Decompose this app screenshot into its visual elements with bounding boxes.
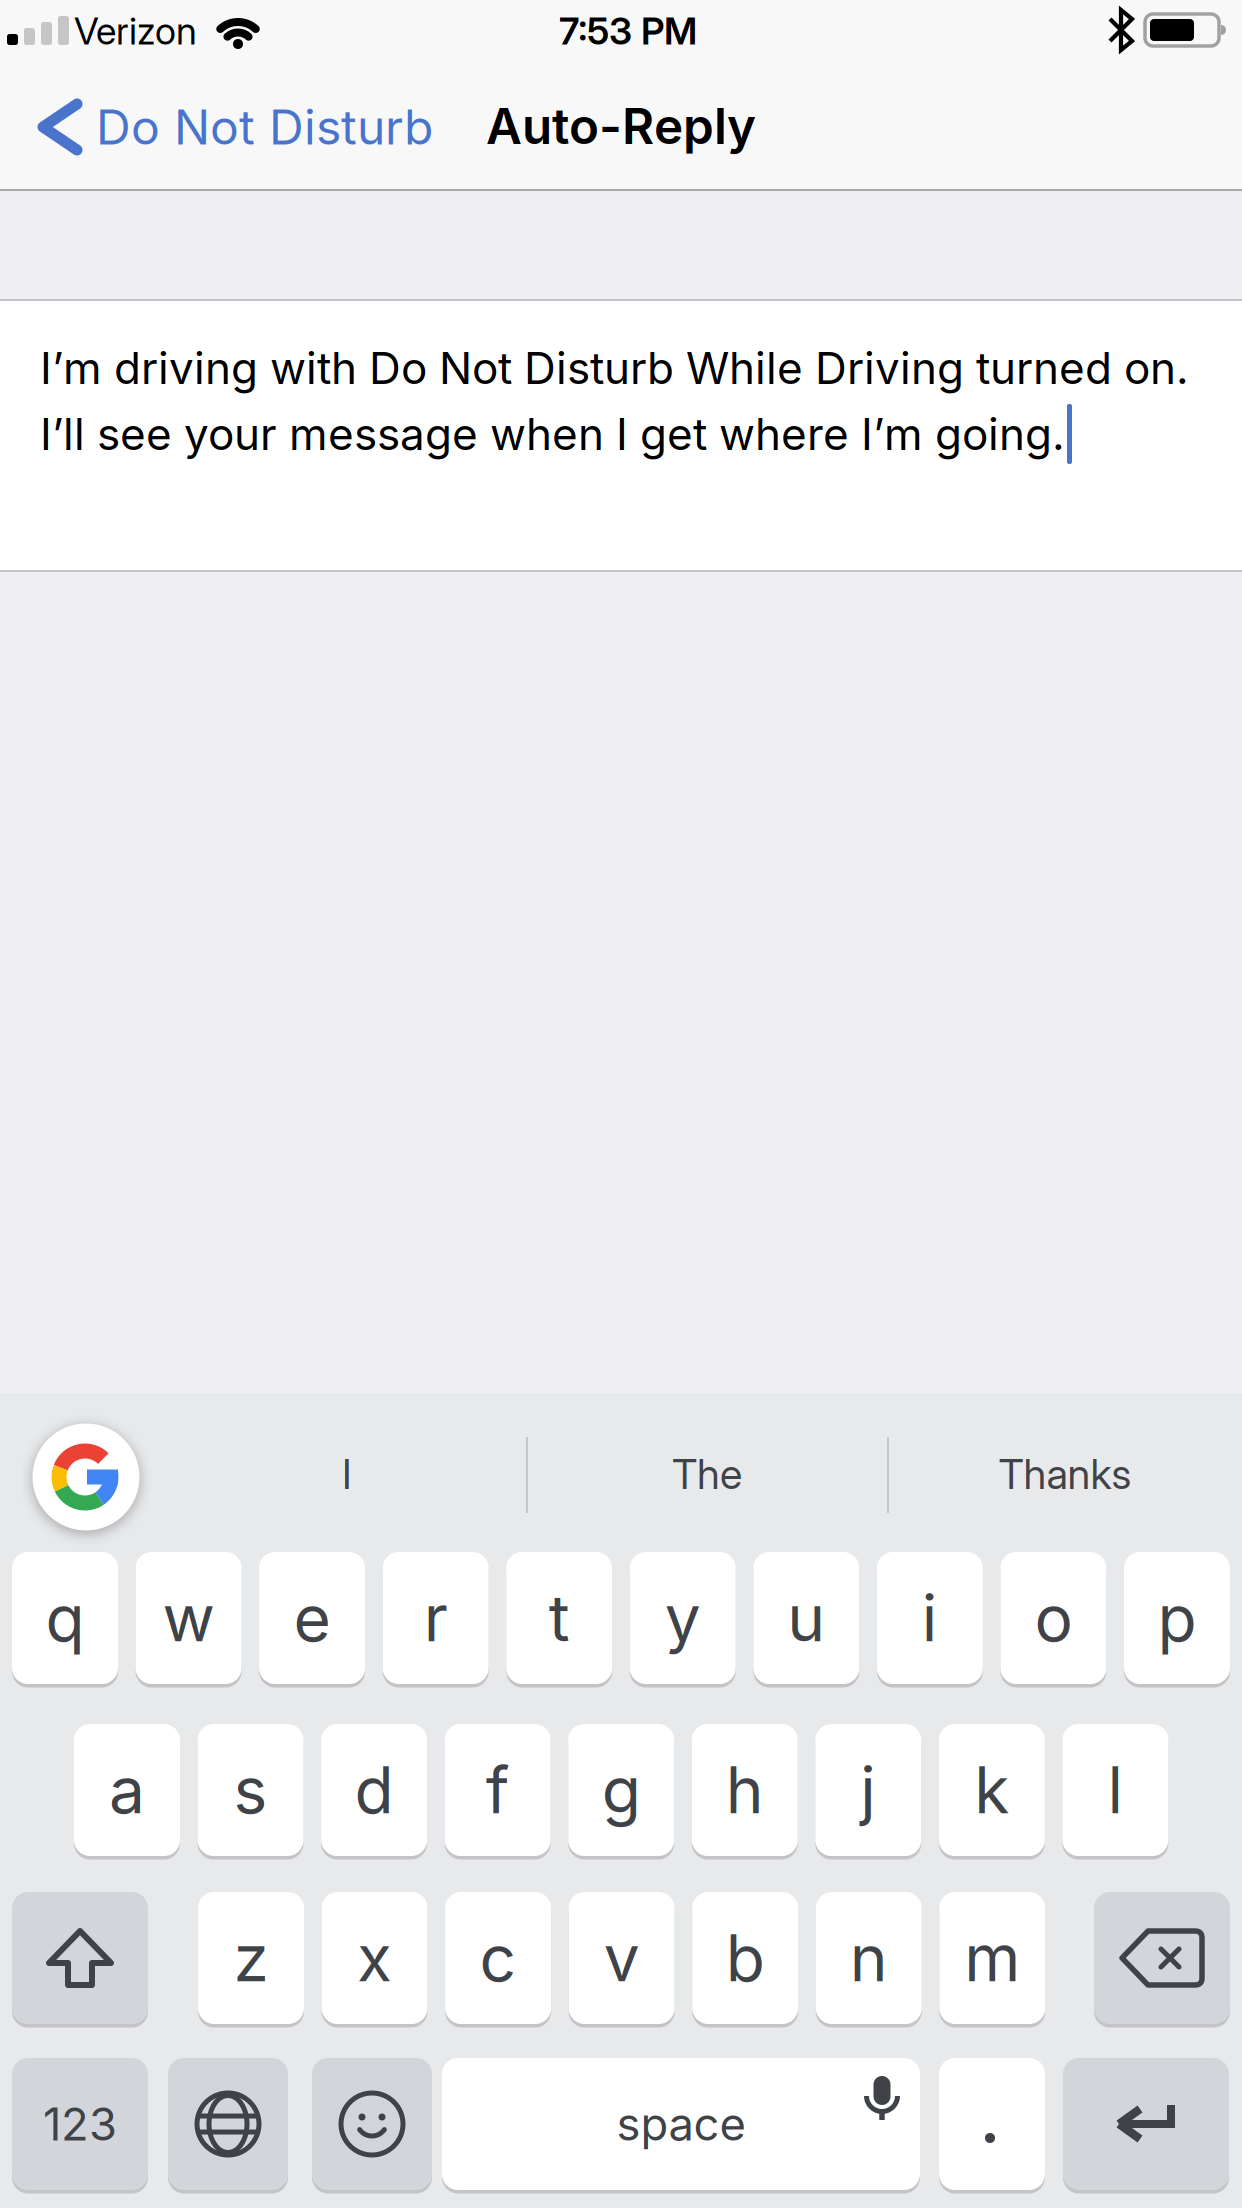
button[interactable]: x	[322, 1892, 428, 2024]
button[interactable]: g	[568, 1724, 674, 1856]
staticText: v	[604, 1920, 640, 1996]
staticText: space	[616, 2097, 745, 2151]
staticText: t	[549, 1580, 570, 1656]
button[interactable]: Delete	[1094, 1892, 1230, 2024]
button[interactable]: m	[939, 1892, 1045, 2024]
staticText: d	[355, 1752, 394, 1828]
staticText: g	[602, 1752, 641, 1828]
button[interactable]: 123	[12, 2058, 148, 2190]
staticText: 7:53 PM	[559, 9, 697, 53]
staticText: b	[726, 1920, 765, 1996]
staticText: Auto-Reply	[486, 97, 756, 155]
staticText: r	[424, 1580, 448, 1656]
button[interactable]: z	[198, 1892, 304, 2024]
button[interactable]: i	[877, 1552, 983, 1684]
button[interactable]: c	[445, 1892, 551, 2024]
button[interactable]: Emoji	[312, 2058, 432, 2190]
button[interactable]: y	[630, 1552, 736, 1684]
button[interactable]: Do Not Disturb	[36, 72, 596, 182]
button[interactable]: w	[136, 1552, 242, 1684]
staticText: i	[922, 1580, 938, 1656]
staticText: n	[850, 1920, 888, 1996]
button[interactable]: k	[939, 1724, 1045, 1856]
staticText: Verizon	[74, 9, 197, 53]
button[interactable]: Period	[939, 2058, 1045, 2190]
staticText: f	[486, 1752, 510, 1828]
staticText: Do Not Disturb	[96, 99, 433, 155]
button[interactable]: u	[753, 1552, 859, 1684]
button[interactable]: space	[442, 2058, 920, 2190]
button[interactable]: e	[259, 1552, 365, 1684]
staticText: k	[974, 1752, 1009, 1828]
button[interactable]: f	[445, 1724, 551, 1856]
button[interactable]: t	[506, 1552, 612, 1684]
button[interactable]: v	[569, 1892, 675, 2024]
staticText: l	[1107, 1752, 1123, 1828]
button[interactable]: n	[816, 1892, 922, 2024]
staticText: e	[294, 1580, 331, 1656]
staticText: p	[1157, 1580, 1196, 1656]
staticText: z	[233, 1920, 268, 1996]
button[interactable]: d	[321, 1724, 427, 1856]
staticText: j	[860, 1752, 876, 1828]
staticText: h	[726, 1752, 764, 1828]
staticText: q	[45, 1580, 84, 1656]
staticText: u	[787, 1580, 825, 1656]
button[interactable]: j	[815, 1724, 921, 1856]
button[interactable]: Shift	[12, 1892, 148, 2024]
button[interactable]: Next keyboard	[168, 2058, 288, 2190]
button[interactable]: Thanks	[915, 1414, 1215, 1534]
staticText: I	[342, 1450, 352, 1498]
button[interactable]: Return	[1063, 2058, 1229, 2190]
button[interactable]: p	[1124, 1552, 1230, 1684]
button[interactable]: Google search	[32, 1423, 139, 1530]
staticText: c	[480, 1920, 517, 1996]
button[interactable]: a	[74, 1724, 180, 1856]
staticText: x	[357, 1920, 392, 1996]
staticText: The	[672, 1450, 742, 1498]
button[interactable]: l	[1062, 1724, 1168, 1856]
button[interactable]: h	[692, 1724, 798, 1856]
staticText: w	[163, 1580, 215, 1656]
button[interactable]: q	[12, 1552, 118, 1684]
button[interactable]: o	[1000, 1552, 1106, 1684]
button[interactable]: The	[557, 1414, 857, 1534]
staticText: I’m driving with Do Not Disturb While Dr…	[40, 342, 1189, 394]
staticText: y	[665, 1580, 701, 1656]
button[interactable]: I	[197, 1414, 497, 1534]
staticText: o	[1034, 1580, 1072, 1656]
button[interactable]: b	[692, 1892, 798, 2024]
staticText: a	[109, 1752, 145, 1828]
button[interactable]: s	[198, 1724, 304, 1856]
staticText: m	[964, 1920, 1020, 1996]
button[interactable]: r	[383, 1552, 489, 1684]
staticText: 123	[43, 2097, 117, 2151]
staticText: s	[234, 1752, 268, 1828]
staticText: I’ll see your message when I get where I…	[40, 408, 1065, 460]
staticText: Thanks	[998, 1450, 1131, 1498]
